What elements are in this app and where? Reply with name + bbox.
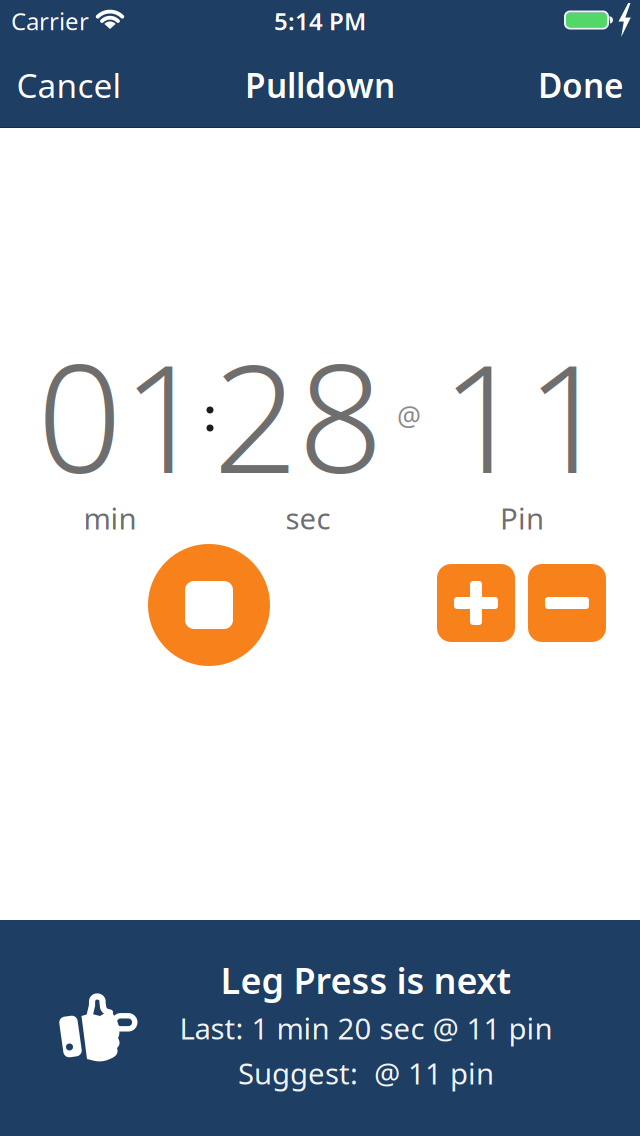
staticText: Cancel bbox=[16, 63, 121, 107]
button[interactable]: Cancel bbox=[2, 43, 135, 127]
staticText: 28 bbox=[213, 316, 383, 514]
staticText: Done bbox=[538, 63, 624, 107]
button[interactable]: Increase pin bbox=[437, 564, 515, 642]
staticText: Last: 1 min 20 sec @ 11 pin bbox=[179, 1008, 552, 1047]
staticText: min bbox=[83, 498, 136, 537]
staticText: 01 bbox=[37, 316, 207, 514]
button[interactable]: Decrease pin bbox=[528, 564, 606, 642]
staticText: Suggest: @ 11 pin bbox=[238, 1053, 494, 1092]
staticText: sec bbox=[285, 498, 330, 537]
staticText: 11 bbox=[441, 316, 611, 514]
staticText: Leg Press is next bbox=[220, 956, 511, 1004]
staticText: @ bbox=[397, 398, 421, 434]
staticText: 5:14 PM bbox=[274, 5, 366, 37]
staticText: Pulldown bbox=[245, 63, 395, 107]
staticText: Pin bbox=[500, 498, 544, 537]
staticText: Carrier bbox=[11, 5, 89, 37]
button[interactable]: Stop bbox=[148, 544, 270, 666]
button[interactable]: Done bbox=[520, 43, 640, 127]
